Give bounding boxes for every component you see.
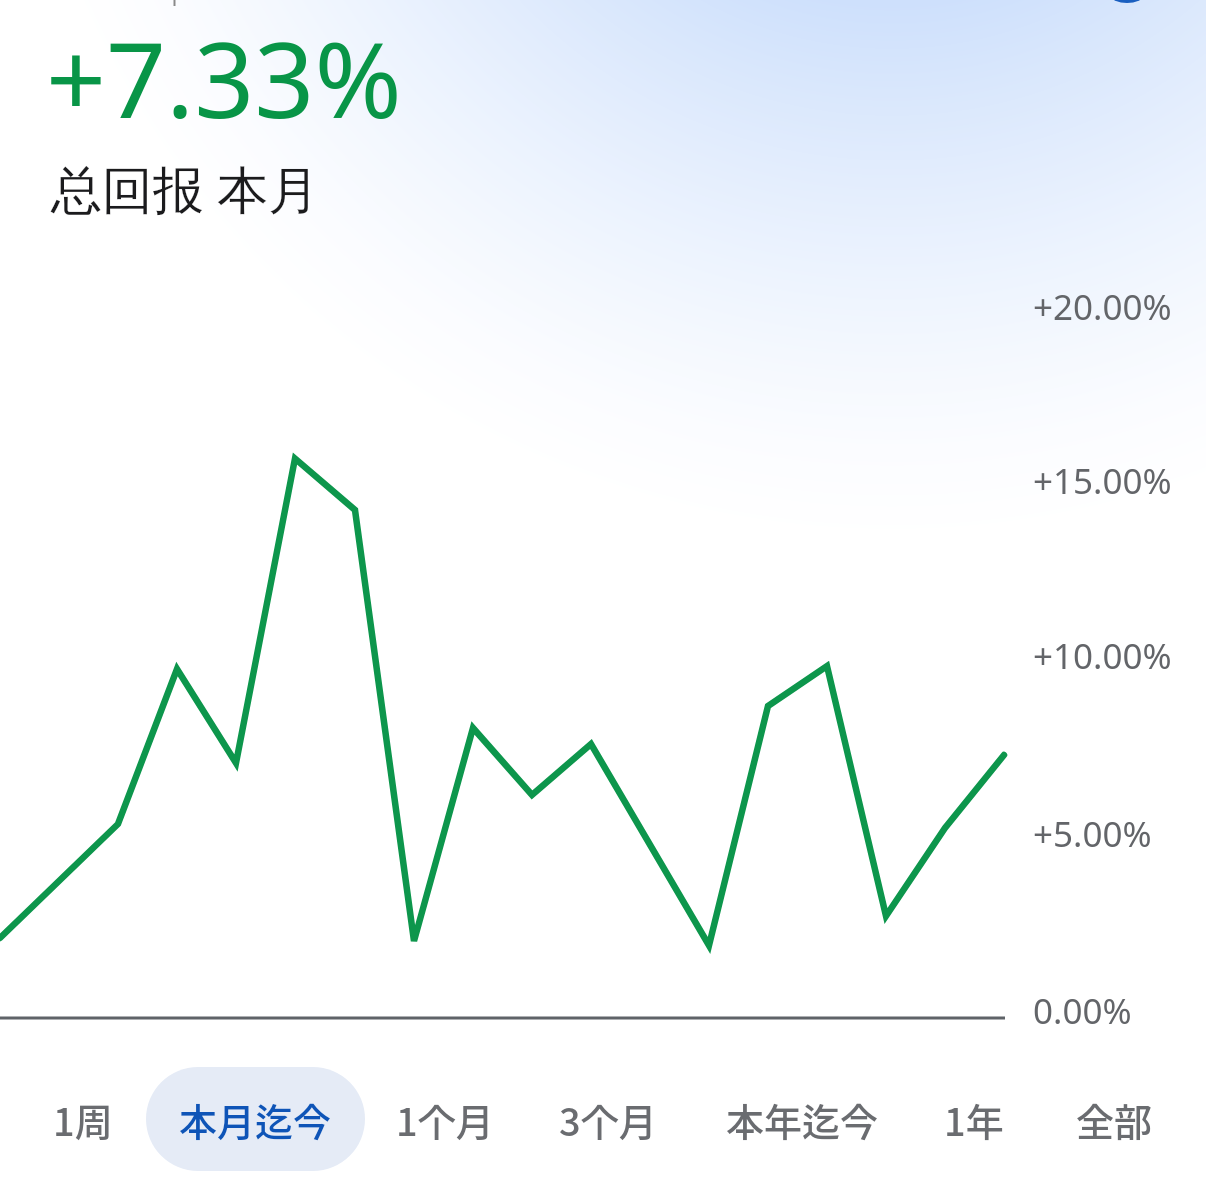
button[interactable]: 3个月 (539, 1067, 677, 1171)
button[interactable]: Account (1096, 0, 1158, 3)
staticText: +5.00% (1033, 810, 1152, 858)
button[interactable]: 全部 (1056, 1067, 1173, 1171)
staticText: 总回报 本月 (51, 153, 320, 223)
staticText: +10.00% (1033, 632, 1172, 680)
button[interactable]: 本月迄今 (146, 1067, 365, 1171)
button[interactable]: 1周 (33, 1067, 133, 1171)
staticText: +20.00% (1033, 283, 1172, 331)
staticText: 1年 (944, 1092, 1004, 1147)
button[interactable]: 1年 (924, 1067, 1024, 1171)
staticText: 0.00% (1033, 987, 1132, 1035)
button[interactable]: 本年迄今 (706, 1067, 899, 1171)
staticText: 1周 (53, 1092, 113, 1147)
staticText: 本月迄今 (179, 1092, 332, 1147)
staticText: 本年迄今 (726, 1092, 879, 1147)
staticText: 全部 (1076, 1092, 1153, 1147)
button[interactable]: 1个月 (376, 1067, 514, 1171)
staticText: 1个月 (396, 1092, 494, 1147)
staticText: +7.33% (46, 6, 402, 149)
staticText: +15.00% (1033, 457, 1172, 505)
staticText: 3个月 (559, 1092, 657, 1147)
